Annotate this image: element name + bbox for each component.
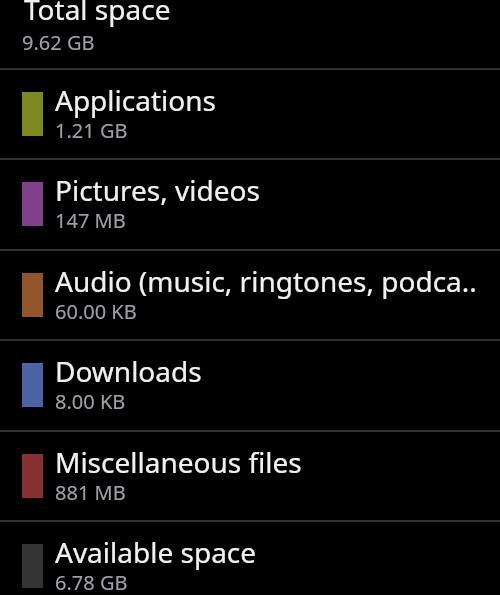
staticText: Downloads [55, 352, 495, 390]
staticText: 60.00 KB [55, 298, 137, 325]
staticText: Miscellaneous files [55, 443, 495, 481]
staticText: Pictures, videos [55, 171, 495, 209]
button[interactable]: Miscellaneous files [0, 430, 500, 520]
staticText: 1.21 GB [55, 117, 128, 144]
button[interactable]: Total space [0, 0, 500, 68]
button[interactable]: Pictures, videos [0, 158, 500, 249]
staticText: 9.62 GB [22, 29, 95, 56]
staticText: Audio (music, ringtones, podca.. [55, 262, 495, 300]
button[interactable]: Downloads [0, 339, 500, 430]
button[interactable]: Applications [0, 68, 500, 158]
button[interactable]: Available space [0, 520, 500, 595]
staticText: 8.00 KB [55, 388, 126, 415]
staticText: 147 MB [55, 207, 126, 234]
staticText: 6.78 GB [55, 569, 128, 595]
staticText: Total space [24, 0, 171, 28]
button[interactable]: Audio (music, ringtones, podca.. [0, 249, 500, 339]
staticText: 881 MB [55, 479, 126, 506]
staticText: Applications [55, 81, 495, 119]
staticText: Available space [55, 533, 495, 571]
